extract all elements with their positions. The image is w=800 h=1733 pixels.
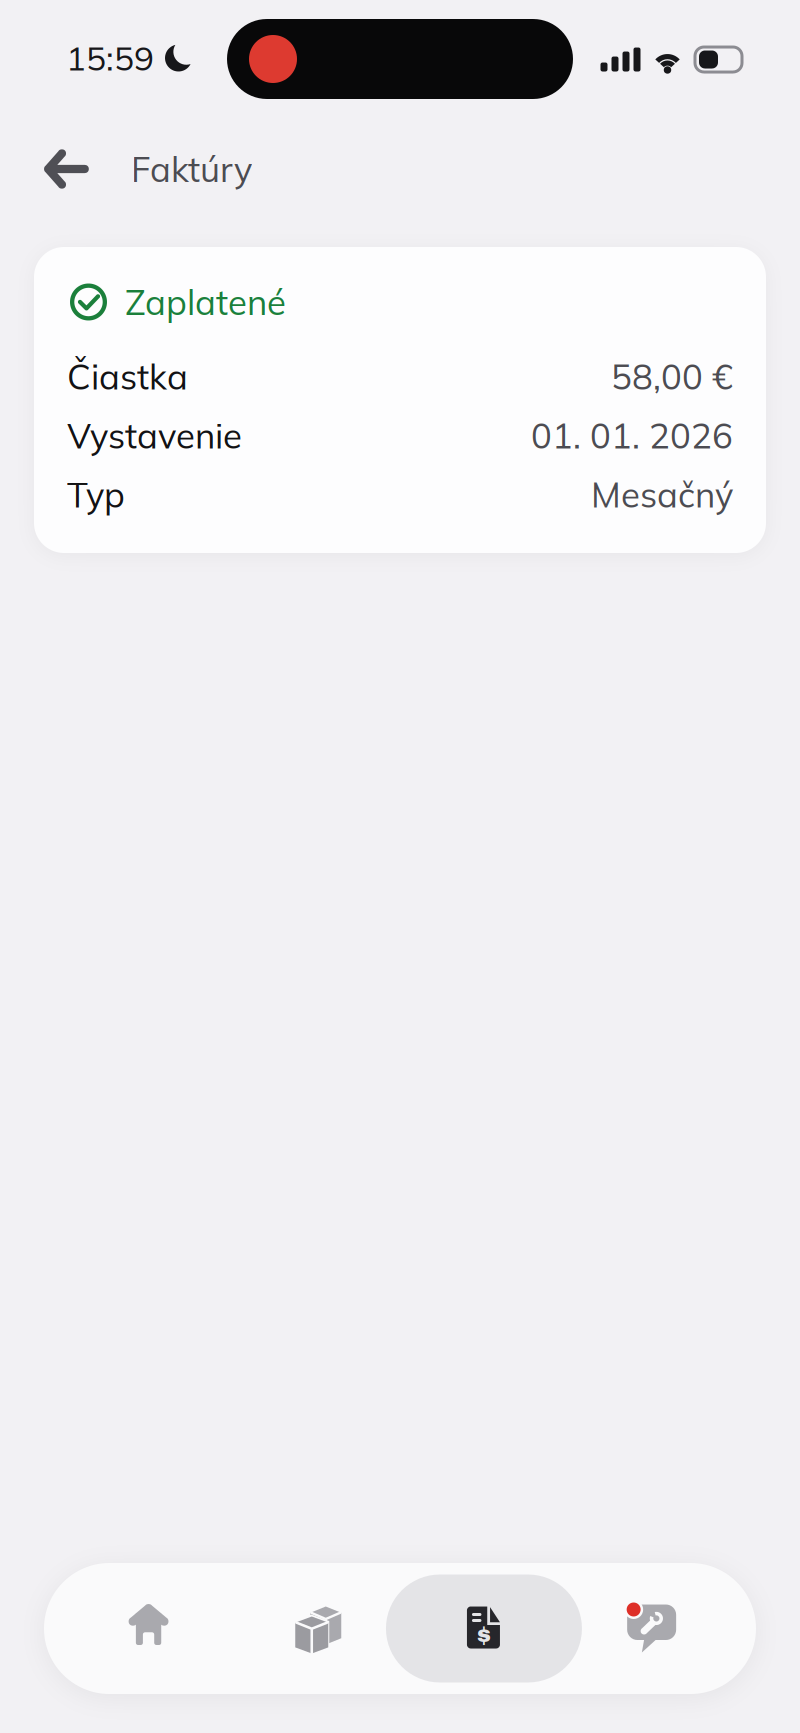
staticText: Faktúry — [131, 147, 252, 191]
staticText: Vystavenie — [67, 414, 242, 457]
staticText: 15:59 — [66, 37, 154, 79]
button[interactable]: Späť — [0, 127, 108, 210]
staticText: 58,00 € — [611, 355, 733, 398]
staticText: Zaplatené — [125, 280, 286, 324]
staticText: Typ — [67, 473, 125, 516]
button[interactable]: Domov — [65, 1563, 232, 1694]
staticText: 01. 01. 2026 — [531, 414, 733, 457]
button[interactable]: Podpora — [568, 1563, 735, 1694]
staticText: Čiastka — [67, 355, 188, 398]
staticText: $ — [477, 1623, 491, 1648]
button[interactable]: Balíky — [232, 1563, 400, 1694]
button[interactable]: Faktúry — [400, 1563, 568, 1694]
staticText: Mesačný — [591, 473, 733, 516]
